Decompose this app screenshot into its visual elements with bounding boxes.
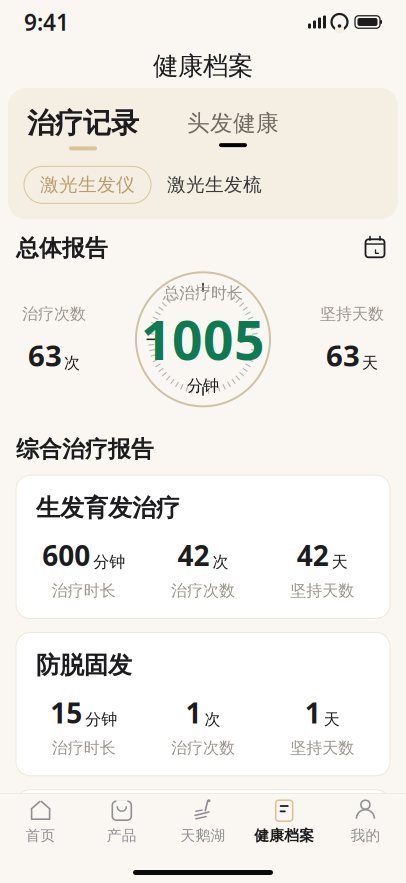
- staticText: 头发健康: [187, 109, 279, 137]
- staticText: 1: [305, 694, 321, 731]
- staticText: 1005: [141, 304, 265, 375]
- staticText: 63: [28, 336, 62, 375]
- staticText: 次: [204, 709, 220, 729]
- staticText: 健康档案: [153, 50, 253, 81]
- staticText: 天: [362, 353, 378, 373]
- staticText: 产品: [107, 827, 137, 845]
- staticText: 我的: [350, 827, 380, 845]
- staticText: 天鹅湖: [180, 827, 225, 845]
- staticText: 次: [212, 552, 228, 572]
- button[interactable]: 生发育发治疗: [16, 475, 390, 618]
- button[interactable]: 健康档案: [244, 791, 325, 849]
- staticText: 治疗时长: [52, 738, 116, 758]
- staticText: 激光生发梳: [167, 173, 262, 196]
- staticText: 63: [326, 336, 360, 375]
- staticText: 激光生发仪: [40, 173, 135, 196]
- staticText: 健康档案: [254, 827, 314, 845]
- staticText: 0: [185, 851, 201, 883]
- button[interactable]: 日历: [360, 233, 390, 263]
- staticText: 次: [204, 867, 220, 883]
- staticText: 分钟: [93, 552, 125, 572]
- staticText: 42: [177, 537, 209, 574]
- staticText: 治疗次数: [22, 304, 86, 324]
- staticText: 综合治疗报告: [16, 435, 154, 463]
- staticText: 分钟: [85, 709, 117, 729]
- button[interactable]: 我的: [325, 791, 406, 849]
- staticText: 坚持天数: [320, 304, 384, 324]
- staticText: 生发育发治疗: [36, 493, 180, 523]
- staticText: 天: [332, 552, 348, 572]
- staticText: 分钟: [187, 376, 219, 395]
- staticText: 总体报告: [16, 234, 108, 262]
- staticText: 次: [64, 353, 80, 373]
- button[interactable]: 防脱固发: [16, 632, 390, 776]
- button[interactable]: 激光生发仪: [24, 166, 151, 203]
- button[interactable]: 治疗记录: [8, 106, 158, 150]
- button[interactable]: 头发健康: [158, 109, 308, 147]
- button[interactable]: 天鹅湖: [162, 791, 244, 849]
- staticText: 600: [42, 537, 90, 574]
- button[interactable]: 首页: [0, 791, 81, 849]
- button[interactable]: 植发后养固: [16, 790, 390, 883]
- staticText: 植发后养固: [36, 808, 156, 837]
- staticText: 首页: [26, 827, 56, 845]
- staticText: 1: [185, 694, 201, 731]
- staticText: 天: [324, 709, 340, 729]
- staticText: 治疗次数: [171, 581, 235, 600]
- staticText: 防脱固发: [36, 650, 132, 680]
- staticText: 9:41: [24, 7, 69, 37]
- staticText: 15: [50, 694, 82, 731]
- button[interactable]: 产品: [81, 791, 162, 849]
- staticText: 坚持天数: [290, 581, 354, 600]
- staticText: 坚持天数: [290, 738, 354, 758]
- staticText: 总治疗时长: [163, 283, 243, 303]
- staticText: 治疗次数: [171, 738, 235, 758]
- button[interactable]: 激光生发梳: [163, 166, 266, 203]
- staticText: 治疗时长: [52, 581, 116, 600]
- staticText: 治疗记录: [27, 106, 139, 140]
- staticText: 42: [297, 537, 329, 574]
